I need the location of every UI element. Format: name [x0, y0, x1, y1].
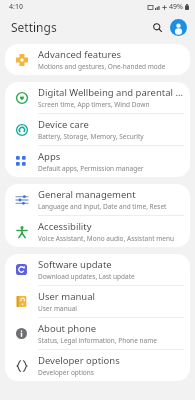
button[interactable]: Accessibility	[5, 216, 190, 247]
staticText: Software update	[38, 258, 112, 271]
button[interactable]: Developer options	[5, 350, 190, 381]
staticText: General management	[38, 188, 136, 201]
staticText: Apps	[38, 150, 61, 163]
staticText: Device care	[38, 118, 89, 131]
staticText: Status, Legal information, Phone name	[38, 336, 157, 345]
staticText: 4:10	[9, 2, 23, 12]
button[interactable]: Software update	[5, 254, 190, 285]
button[interactable]: Search	[148, 18, 166, 36]
staticText: Motions and gestures, One-handed mode	[38, 62, 166, 71]
button[interactable]: Advanced features	[5, 44, 190, 75]
button[interactable]: General management	[5, 184, 190, 215]
button[interactable]: Device care	[5, 114, 190, 145]
staticText: About phone	[38, 322, 97, 335]
staticText: Settings	[11, 19, 57, 35]
staticText: Battery, Storage, Memory, Security	[38, 132, 144, 141]
staticText: User manual	[38, 304, 77, 313]
staticText: Language and input, Date and time, Reset	[38, 202, 167, 211]
staticText: Digital Wellbeing and parental controls	[38, 86, 183, 99]
staticText: Developer options	[38, 354, 120, 367]
button[interactable]: User manual	[5, 286, 190, 317]
staticText: User manual	[38, 290, 95, 303]
button[interactable]: Apps	[5, 146, 190, 177]
button[interactable]: About phone	[5, 318, 190, 349]
staticText: Voice Assistant, Mono audio, Assistant m…	[38, 234, 174, 243]
staticText: Default apps, Permission manager	[38, 164, 144, 173]
staticText: Advanced features	[38, 48, 122, 61]
staticText: Download updates, Last update	[38, 272, 135, 281]
staticText: Developer options	[38, 368, 94, 377]
button[interactable]: Digital Wellbeing and parental controls	[5, 82, 190, 113]
staticText: Screen time, App timers, Wind Down	[38, 100, 150, 109]
button[interactable]: Account	[170, 19, 187, 36]
staticText: 49%	[169, 2, 183, 12]
staticText: Accessibility	[38, 220, 92, 233]
